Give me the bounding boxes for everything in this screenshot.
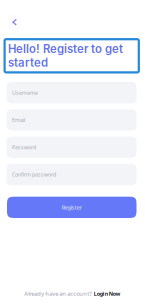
button[interactable]: Back bbox=[9, 14, 20, 30]
staticText: Login Now bbox=[94, 290, 121, 297]
staticText: Username bbox=[12, 89, 38, 96]
button[interactable]: Login Now bbox=[94, 290, 121, 297]
staticText: Email bbox=[12, 116, 25, 124]
staticText: Already have an account? bbox=[24, 290, 91, 297]
staticText: Hello! Register to get started bbox=[8, 42, 123, 69]
button[interactable]: Register bbox=[7, 197, 136, 218]
staticText: Register bbox=[62, 204, 82, 211]
staticText: Confirm password bbox=[12, 171, 56, 178]
staticText: Password bbox=[12, 144, 36, 151]
